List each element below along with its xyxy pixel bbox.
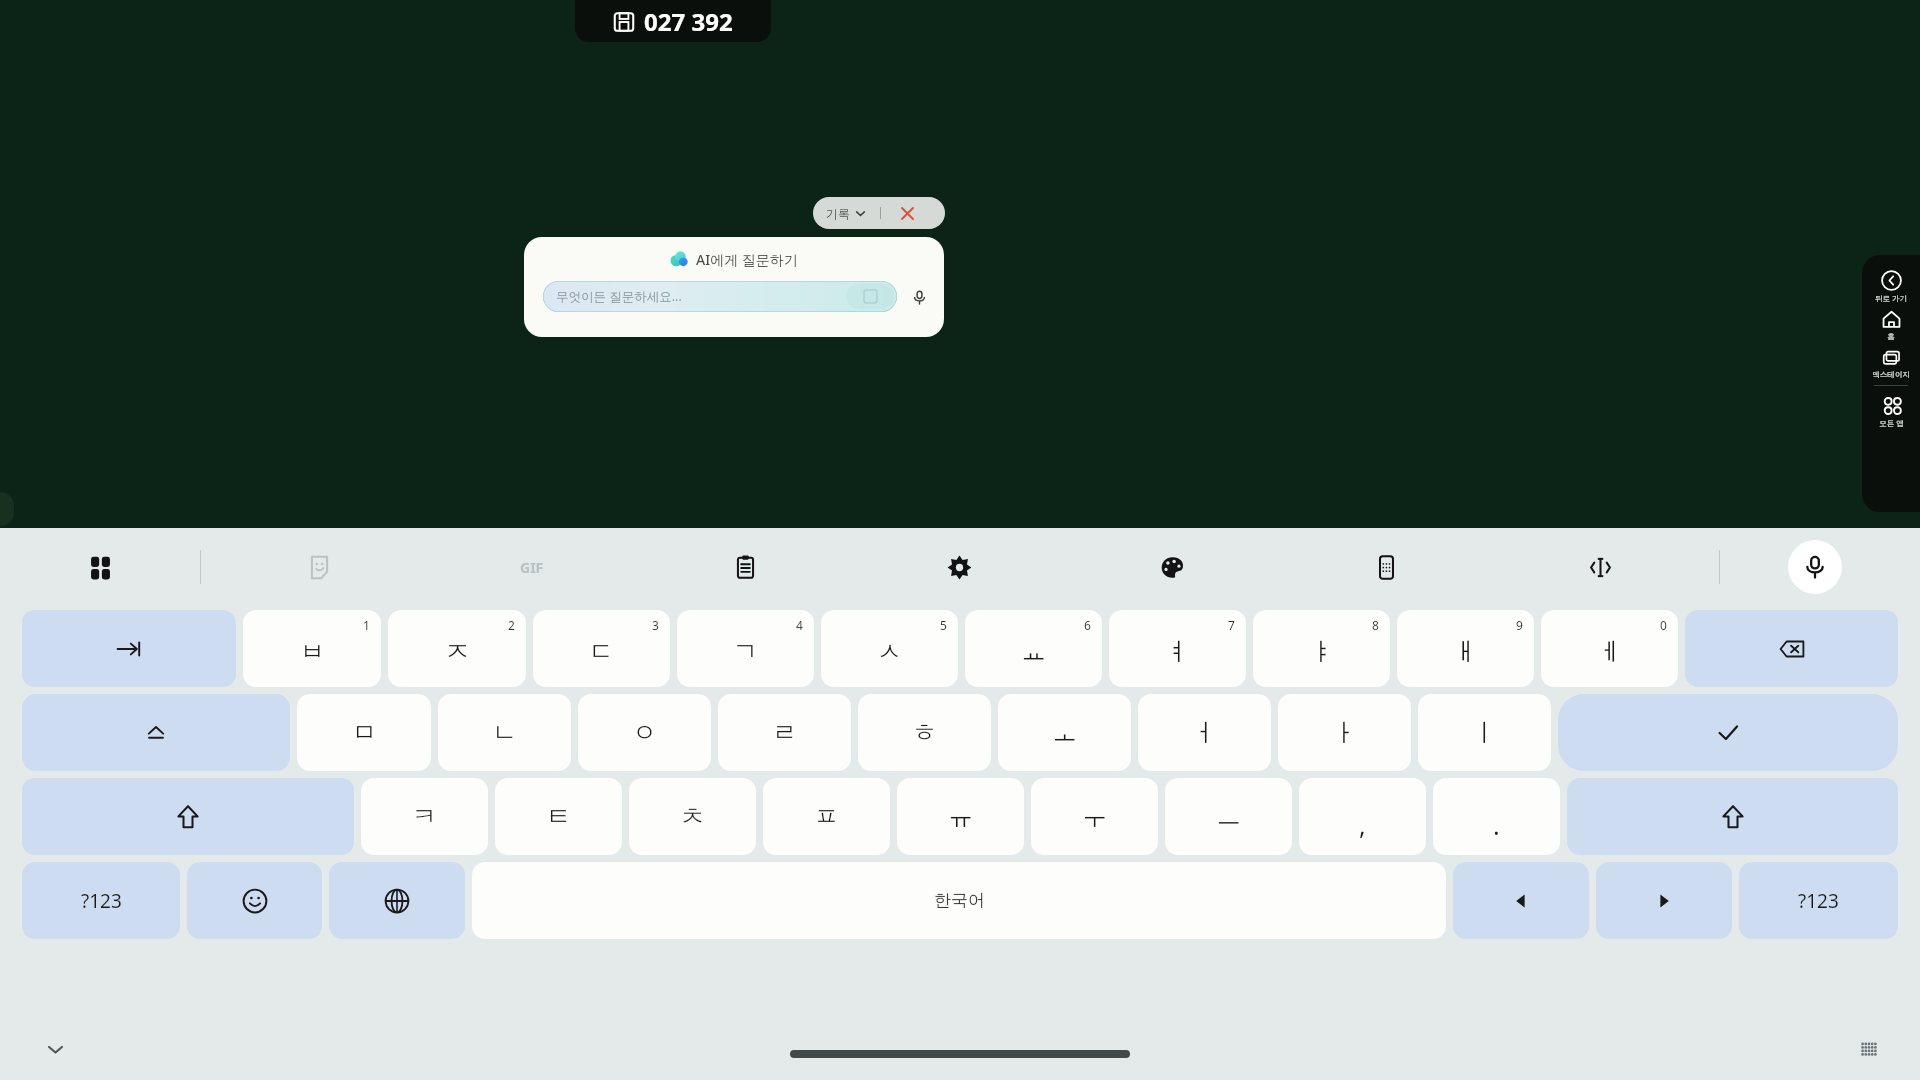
staticText: 무엇이든 질문하세요... [556, 288, 682, 305]
staticText: ㅂ [300, 636, 325, 667]
staticText: 6 [1084, 617, 1091, 633]
staticText: 5 [940, 617, 947, 633]
staticText: AI에게 질문하기 [696, 250, 798, 269]
button[interactable]: ㅔ [1541, 610, 1678, 687]
staticText: ㅅ [877, 636, 902, 667]
staticText: ㅈ [445, 636, 470, 667]
staticText: 2 [508, 617, 515, 633]
staticText: 9 [1516, 617, 1523, 633]
button[interactable]: ㄱ [677, 610, 814, 687]
staticText: 뒤로 가기 [1875, 293, 1907, 303]
staticText: . [1493, 808, 1500, 842]
button[interactable]: One-handed keyboard [1359, 540, 1413, 594]
staticText: 1 [363, 617, 370, 633]
button[interactable]: ?123 [1739, 862, 1898, 939]
button[interactable]: ㅐ [1397, 610, 1534, 687]
button[interactable]: Stickers [292, 540, 346, 594]
staticText: 027 392 [644, 5, 733, 38]
button[interactable]: ㄹ [718, 694, 851, 771]
button[interactable]: Text editing [1573, 540, 1627, 594]
button[interactable]: Themes [1145, 540, 1199, 594]
button[interactable]: Clipboard [718, 540, 772, 594]
button[interactable]: 무엇이든 질문하세요... [543, 281, 897, 312]
button[interactable]: ㅍ [763, 778, 890, 855]
button[interactable]: ㅌ [495, 778, 622, 855]
staticText: ㅇ [632, 717, 657, 748]
button[interactable]: ㅈ [388, 610, 526, 687]
staticText: 0 [1660, 617, 1667, 633]
button[interactable]: 기록 [826, 206, 866, 221]
button[interactable]: Resize keyboard [1854, 1034, 1884, 1064]
staticText: ?123 [1798, 888, 1839, 914]
staticText: ㅗ [1052, 717, 1077, 748]
button[interactable]: Change language [329, 862, 465, 939]
staticText: ㅛ [1021, 636, 1046, 667]
button[interactable]: ㅓ [1138, 694, 1271, 771]
button[interactable]: Backspace [1685, 610, 1898, 687]
button[interactable]: ㅏ [1278, 694, 1411, 771]
button[interactable]: ㅕ [1109, 610, 1246, 687]
button[interactable]: ㅂ [243, 610, 381, 687]
button[interactable]: Voice input [908, 286, 930, 308]
button[interactable]: ㅎ [858, 694, 991, 771]
staticText: ㄴ [492, 717, 517, 748]
button[interactable]: Move cursor left [1453, 862, 1589, 939]
button[interactable]: ㄴ [438, 694, 571, 771]
button[interactable]: ㄷ [533, 610, 670, 687]
button[interactable]: 한국어 [472, 862, 1446, 939]
staticText: ㅋ [412, 801, 437, 832]
button[interactable]: 모든 앱 [1862, 392, 1920, 431]
staticText: ㅔ [1597, 636, 1622, 667]
button[interactable]: . [1433, 778, 1560, 855]
button[interactable]: Shift [1567, 778, 1898, 855]
button[interactable]: 뒤로 가기 [1862, 267, 1920, 306]
button[interactable]: ㅁ [297, 694, 431, 771]
button[interactable]: Hide keyboard [38, 1032, 72, 1066]
staticText: ㅡ [1216, 801, 1241, 832]
button[interactable]: Settings [932, 540, 986, 594]
staticText: 한국어 [934, 890, 985, 911]
button[interactable]: Close [897, 203, 917, 223]
staticText: 8 [1372, 617, 1379, 633]
button[interactable]: Enter [1558, 694, 1898, 771]
button[interactable]: Caps lock [22, 694, 290, 771]
button[interactable]: Move cursor right [1596, 862, 1732, 939]
staticText: ㅐ [1453, 636, 1478, 667]
button[interactable]: Tab [22, 610, 236, 687]
button[interactable]: ㅅ [821, 610, 958, 687]
button[interactable]: ㅜ [1031, 778, 1158, 855]
button[interactable]: ㅑ [1253, 610, 1390, 687]
button[interactable]: GIF [504, 540, 558, 594]
staticText: 7 [1228, 617, 1235, 633]
staticText: ㄹ [772, 717, 797, 748]
button[interactable]: ㅡ [1165, 778, 1292, 855]
staticText: , [1359, 808, 1366, 842]
button[interactable]: ㅛ [965, 610, 1102, 687]
staticText: ㄱ [733, 636, 758, 667]
staticText: 3 [652, 617, 659, 633]
button[interactable]: ?123 [22, 862, 180, 939]
button[interactable]: ㅊ [629, 778, 756, 855]
staticText: ㅍ [814, 801, 839, 832]
staticText: ㅌ [546, 801, 571, 832]
button[interactable]: , [1299, 778, 1426, 855]
button[interactable]: Voice typing [1788, 540, 1842, 594]
button[interactable]: 덱스테이지 [1862, 344, 1920, 382]
staticText: ㅕ [1165, 636, 1190, 667]
staticText: ?123 [81, 888, 122, 914]
button[interactable]: 홈 [1862, 306, 1920, 344]
button[interactable]: Send [846, 284, 894, 309]
staticText: 홈 [1887, 332, 1895, 341]
button[interactable]: Shift [22, 778, 354, 855]
button[interactable]: Emoji [187, 862, 322, 939]
button[interactable]: ㅋ [361, 778, 488, 855]
staticText: ㅜ [1082, 801, 1107, 832]
button[interactable]: 027 392 [575, 0, 771, 42]
button[interactable]: ㅠ [897, 778, 1024, 855]
button[interactable]: ㅣ [1418, 694, 1551, 771]
button[interactable]: ㅇ [578, 694, 711, 771]
staticText: 덱스테이지 [1872, 370, 1910, 379]
staticText: ㅎ [912, 717, 937, 748]
button[interactable]: ㅗ [998, 694, 1131, 771]
button[interactable]: Keyboard modes [73, 540, 127, 594]
